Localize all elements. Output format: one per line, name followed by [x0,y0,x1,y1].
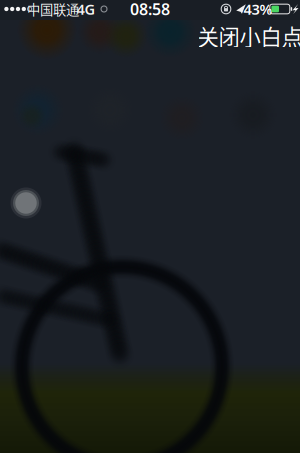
staticText: 中国联通 [27,0,79,19]
staticText: 43% [243,0,272,19]
staticText: 关闭小白点 [197,21,300,51]
staticText: 08:58 [130,0,170,20]
button[interactable]: AssistiveTouch [8,185,44,221]
staticText: 4G [76,0,95,19]
